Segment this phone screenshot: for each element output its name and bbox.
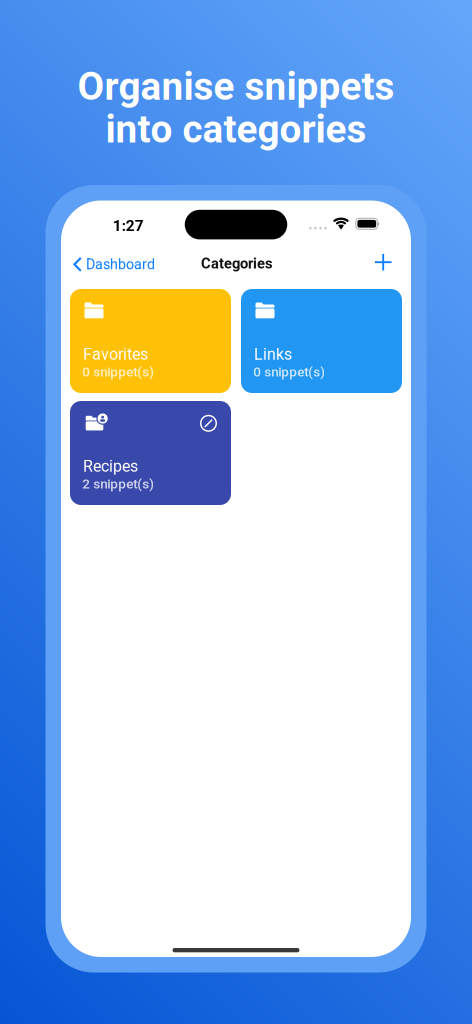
staticText: into categories (105, 107, 366, 152)
button[interactable]: Recipes (70, 401, 231, 505)
button[interactable]: Add category (364, 243, 402, 281)
staticText: Organise snippets (77, 64, 394, 109)
staticText: 1:27 (113, 217, 144, 235)
staticText: Recipes (83, 457, 138, 476)
staticText: Links (254, 345, 292, 364)
staticText: 0 snippet(s) (82, 364, 154, 380)
button[interactable]: Favorites (70, 289, 231, 393)
button[interactable]: Links (241, 289, 402, 393)
button[interactable]: Dashboard (64, 249, 164, 280)
staticText: 2 snippet(s) (82, 476, 154, 492)
staticText: Dashboard (86, 256, 155, 273)
staticText: 0 snippet(s) (253, 364, 325, 380)
staticText: Favorites (83, 345, 148, 364)
staticText: Categories (201, 255, 273, 272)
